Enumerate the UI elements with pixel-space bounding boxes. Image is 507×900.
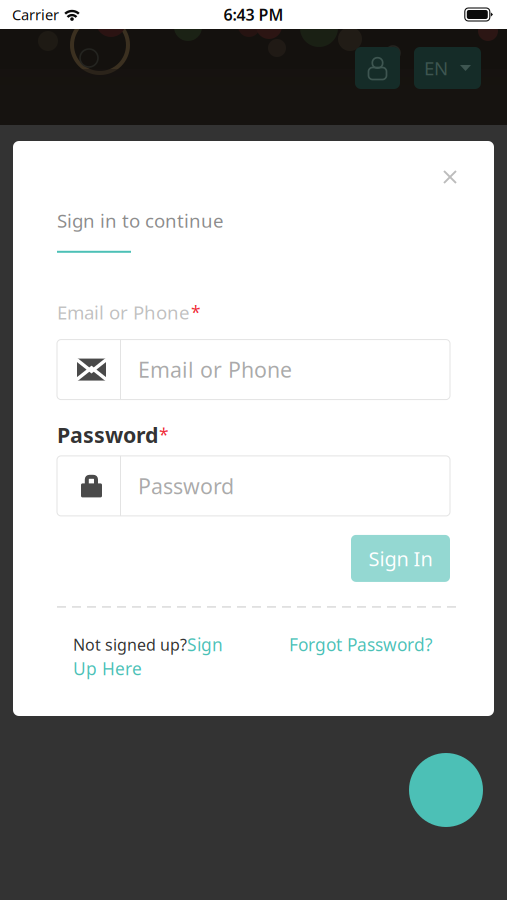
staticText: 6:43 PM	[223, 4, 283, 25]
button[interactable]: Email or Phone	[57, 340, 450, 400]
button[interactable]: Account	[355, 47, 400, 89]
staticText: Email or Phone	[138, 355, 292, 384]
staticText: *	[191, 301, 201, 324]
staticText: Up Here	[73, 657, 142, 680]
button[interactable]: Sign In	[351, 535, 450, 582]
staticText: Email or Phone	[57, 300, 190, 325]
staticText: Sign In	[368, 545, 432, 572]
staticText: Sign	[187, 633, 223, 656]
button[interactable]: Password	[57, 456, 450, 516]
staticText: Forgot Password?	[289, 633, 433, 656]
button[interactable]: Up Here	[73, 657, 142, 680]
staticText: *	[159, 423, 169, 446]
staticText: Not signed up?	[73, 634, 187, 655]
staticText: Password	[57, 421, 158, 449]
button[interactable]: EN	[414, 47, 481, 89]
button[interactable]: Sign	[187, 633, 223, 656]
staticText: Password	[138, 472, 234, 500]
staticText: EN	[424, 56, 448, 80]
button[interactable]: Forgot Password?	[289, 633, 433, 656]
button[interactable]: Close	[432, 160, 468, 194]
staticText: Carrier	[12, 5, 59, 24]
staticText: Sign in to continue	[57, 208, 224, 233]
button[interactable]: Chat	[409, 753, 483, 827]
